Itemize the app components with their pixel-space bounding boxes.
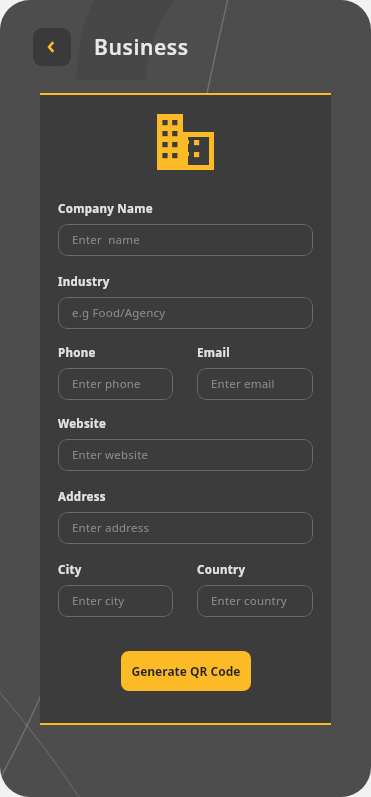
staticText: Address	[58, 489, 106, 505]
staticText: Email	[197, 345, 230, 361]
button[interactable]: e.g Food/Agency	[58, 297, 313, 329]
staticText: Generate QR Code	[131, 663, 241, 679]
button[interactable]: Back	[33, 28, 71, 66]
button[interactable]: Enter city	[58, 585, 173, 617]
staticText: City	[58, 562, 82, 578]
staticText: Phone	[58, 345, 96, 361]
button[interactable]: Enter phone	[58, 368, 173, 400]
button[interactable]: Enter name	[58, 224, 313, 256]
staticText: Enter phone	[72, 376, 141, 392]
button[interactable]: Generate QR Code	[121, 651, 251, 691]
button[interactable]: Enter country	[197, 585, 313, 617]
button[interactable]: Enter website	[58, 439, 313, 471]
staticText: Business	[94, 33, 189, 62]
staticText: Enter name	[72, 232, 140, 248]
staticText: Website	[58, 416, 107, 432]
staticText: e.g Food/Agency	[72, 305, 166, 321]
button[interactable]: Enter email	[197, 368, 313, 400]
staticText: Enter email	[211, 376, 275, 392]
staticText: Company Name	[58, 201, 153, 217]
staticText: Industry	[58, 274, 110, 290]
staticText: Enter country	[211, 593, 287, 609]
staticText: Enter website	[72, 447, 149, 463]
button[interactable]: Enter address	[58, 512, 313, 544]
staticText: Enter city	[72, 593, 125, 609]
staticText: Country	[197, 562, 246, 578]
staticText: Enter address	[72, 520, 150, 536]
